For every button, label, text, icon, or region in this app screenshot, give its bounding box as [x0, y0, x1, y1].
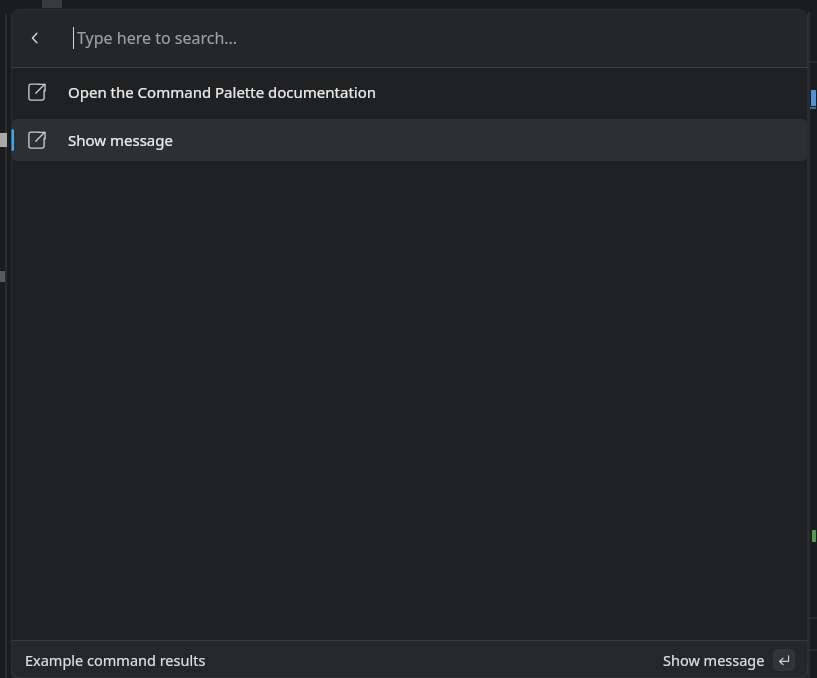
staticText: Show message [68, 130, 173, 150]
button[interactable]: Show message [11, 116, 808, 164]
button[interactable]: Open the Command Palette documentation [11, 68, 808, 116]
staticText: Open the Command Palette documentation [68, 82, 377, 102]
button[interactable]: Back [17, 20, 53, 56]
staticText: Type here to search... [77, 27, 238, 49]
button[interactable]: Show message [661, 647, 797, 673]
staticText: Show message [663, 650, 765, 670]
staticText: Example command results [25, 650, 206, 670]
